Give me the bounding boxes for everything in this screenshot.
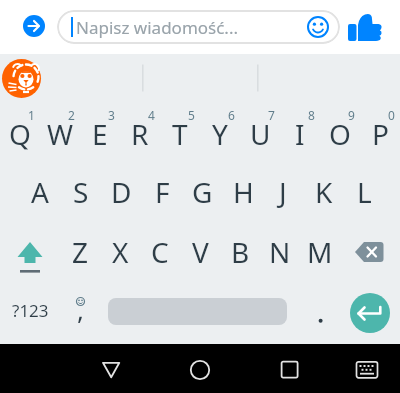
staticText: C bbox=[151, 233, 169, 271]
button[interactable]: K bbox=[304, 164, 344, 220]
staticText: H bbox=[233, 173, 254, 211]
button[interactable]: N bbox=[260, 224, 300, 280]
staticText: 3 bbox=[108, 107, 115, 123]
staticText: E bbox=[92, 115, 108, 153]
staticText: 2 bbox=[68, 107, 75, 123]
button[interactable]: H bbox=[223, 164, 263, 220]
button[interactable]: E bbox=[80, 106, 120, 162]
button[interactable]: O bbox=[320, 106, 360, 162]
button[interactable]: V bbox=[180, 224, 220, 280]
button[interactable]: Q bbox=[0, 106, 40, 162]
staticText: F bbox=[155, 173, 170, 211]
staticText: X bbox=[112, 233, 129, 271]
button[interactable]: , bbox=[67, 289, 93, 329]
staticText: ?123 bbox=[12, 299, 49, 322]
staticText: D bbox=[111, 173, 132, 211]
button[interactable]: J bbox=[263, 164, 303, 220]
staticText: S bbox=[73, 173, 89, 211]
staticText: 1 bbox=[28, 107, 35, 123]
button[interactable]: G bbox=[182, 164, 222, 220]
button[interactable]: Z bbox=[60, 224, 100, 280]
button[interactable]: U bbox=[240, 106, 280, 162]
staticText: A bbox=[31, 173, 49, 211]
button[interactable]: D bbox=[101, 164, 141, 220]
button[interactable]: R bbox=[120, 106, 160, 162]
button[interactable]: A bbox=[20, 164, 60, 220]
staticText: O bbox=[329, 115, 351, 153]
staticText: 5 bbox=[188, 107, 195, 123]
staticText: L bbox=[357, 173, 372, 211]
button[interactable] bbox=[347, 12, 385, 44]
button[interactable]: S bbox=[61, 164, 101, 220]
button[interactable] bbox=[23, 15, 45, 37]
staticText: Napisz wiadomość... bbox=[76, 16, 239, 39]
staticText: R bbox=[131, 115, 149, 153]
staticText: K bbox=[315, 173, 333, 211]
staticText: M bbox=[307, 233, 333, 271]
button[interactable] bbox=[343, 346, 391, 393]
staticText: Q bbox=[9, 115, 31, 153]
button[interactable] bbox=[176, 346, 224, 393]
staticText: 0 bbox=[388, 107, 395, 123]
staticText: 6 bbox=[228, 107, 235, 123]
staticText: Z bbox=[72, 233, 89, 271]
button[interactable] bbox=[350, 237, 390, 267]
button[interactable]: ?123 bbox=[7, 290, 53, 330]
staticText: 7 bbox=[268, 107, 275, 123]
button[interactable]: L bbox=[344, 164, 384, 220]
staticText: P bbox=[372, 115, 389, 153]
button[interactable] bbox=[307, 16, 329, 38]
button[interactable] bbox=[350, 293, 390, 333]
button[interactable]: Y bbox=[200, 106, 240, 162]
staticText: I bbox=[295, 115, 305, 153]
staticText: T bbox=[172, 115, 188, 153]
button[interactable] bbox=[108, 298, 287, 325]
staticText: 8 bbox=[308, 107, 315, 123]
staticText: U bbox=[250, 115, 271, 153]
button[interactable]: C bbox=[140, 224, 180, 280]
staticText: , bbox=[77, 292, 84, 327]
button[interactable]: Napisz wiadomość... bbox=[57, 10, 340, 44]
button[interactable]: B bbox=[220, 224, 260, 280]
staticText: J bbox=[279, 173, 287, 211]
button[interactable]: X bbox=[100, 224, 140, 280]
button[interactable] bbox=[10, 235, 50, 275]
staticText: 9 bbox=[348, 107, 355, 123]
button[interactable]: I bbox=[280, 106, 320, 162]
staticText: N bbox=[269, 233, 291, 271]
staticText: G bbox=[192, 173, 213, 211]
button[interactable] bbox=[87, 346, 135, 393]
button[interactable] bbox=[2, 59, 41, 98]
staticText: B bbox=[231, 233, 250, 271]
button[interactable]: T bbox=[160, 106, 200, 162]
staticText: V bbox=[192, 233, 209, 271]
button[interactable] bbox=[265, 346, 313, 393]
button[interactable]: M bbox=[300, 224, 340, 280]
button[interactable]: P bbox=[360, 106, 400, 162]
button[interactable]: F bbox=[142, 164, 182, 220]
staticText: 4 bbox=[148, 107, 155, 123]
staticText: W bbox=[47, 115, 74, 153]
staticText: Y bbox=[212, 115, 228, 153]
button[interactable] bbox=[310, 303, 332, 333]
button[interactable]: W bbox=[40, 106, 80, 162]
